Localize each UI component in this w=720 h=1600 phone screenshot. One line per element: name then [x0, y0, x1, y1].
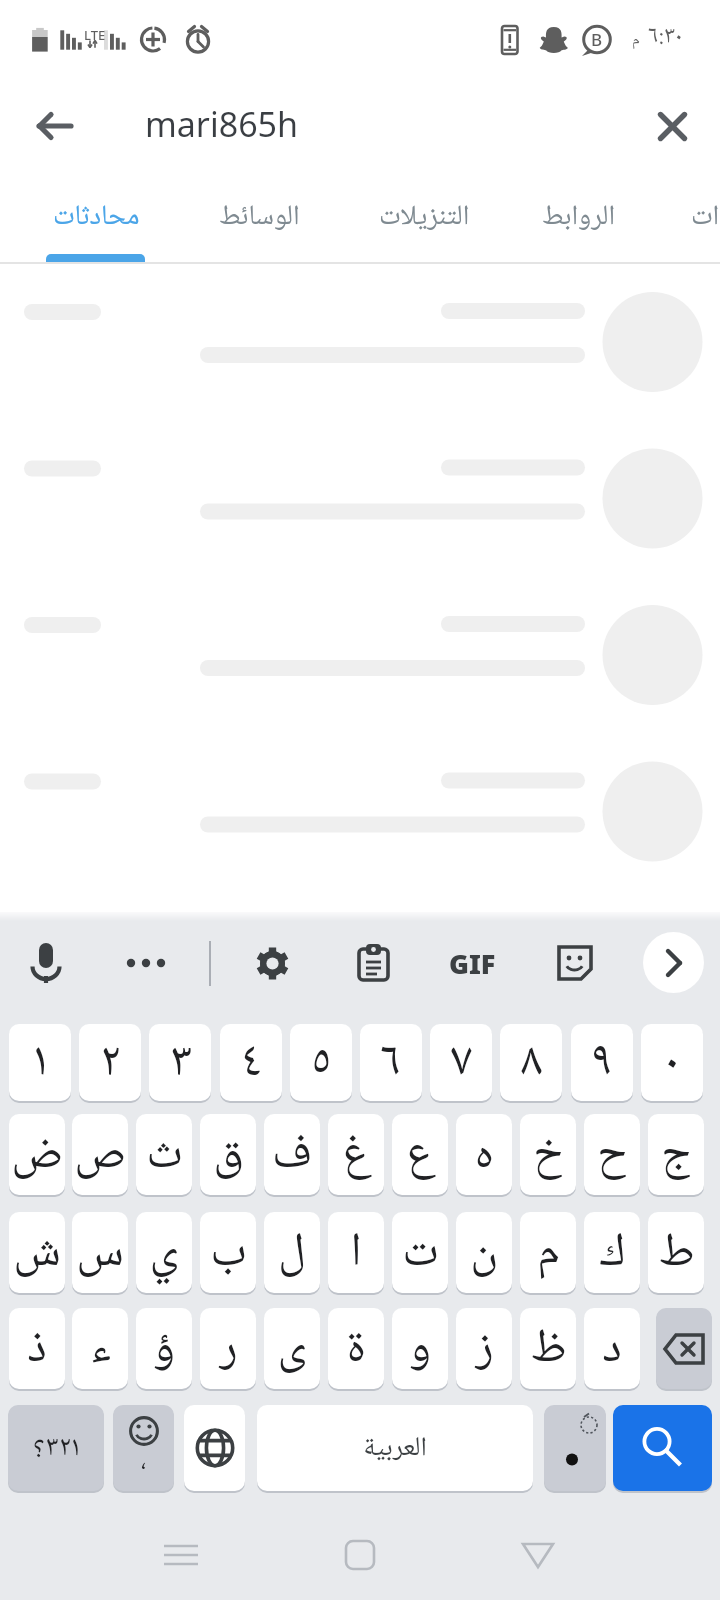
button[interactable]: الوسائط	[180, 172, 339, 262]
button[interactable]: م	[520, 1212, 576, 1293]
button[interactable]: Stickers	[545, 933, 605, 993]
staticText: ٧	[451, 1030, 472, 1095]
button[interactable]: ق	[200, 1114, 256, 1195]
button[interactable]: ز	[456, 1308, 512, 1389]
staticText: ٦:٣٠	[648, 20, 683, 53]
button[interactable]: د	[584, 1308, 640, 1389]
button[interactable]: ظ	[520, 1308, 576, 1389]
button[interactable]: ه	[456, 1114, 512, 1195]
staticText: ٢	[59, 1429, 71, 1467]
button[interactable]: ج	[648, 1114, 704, 1195]
button[interactable]: More options	[116, 933, 176, 993]
staticText: ٤	[241, 1030, 262, 1095]
staticText: ،	[141, 1445, 147, 1478]
button[interactable]: ي	[136, 1212, 192, 1293]
staticText: ٥	[312, 1030, 331, 1095]
staticText: ه	[474, 1123, 494, 1187]
button[interactable]: التنزيلات	[344, 172, 504, 262]
button[interactable]: Backspace	[656, 1308, 712, 1389]
button[interactable]: ى	[264, 1308, 320, 1389]
button[interactable]: Change language	[184, 1405, 245, 1491]
staticText: س	[76, 1221, 124, 1285]
staticText: ط	[658, 1221, 695, 1285]
button[interactable]	[0, 304, 720, 454]
button[interactable]: ط	[648, 1212, 704, 1293]
button[interactable]: ٥	[290, 1024, 352, 1101]
staticText: GIF	[449, 945, 496, 982]
button[interactable]: ٠	[641, 1024, 703, 1101]
button[interactable]	[0, 461, 720, 611]
button[interactable]: ف	[264, 1114, 320, 1195]
button[interactable]: ات	[650, 172, 720, 262]
staticText: الروابط	[542, 198, 616, 236]
button[interactable]: ء	[72, 1308, 128, 1389]
staticText: ات	[691, 198, 720, 236]
button[interactable]: ذ	[9, 1308, 65, 1389]
button[interactable]: Expand toolbar	[643, 932, 704, 993]
staticText: ا	[350, 1221, 362, 1285]
staticText: ٢	[100, 1030, 120, 1095]
staticText: العربية	[363, 1430, 427, 1467]
button[interactable]: GIF	[442, 933, 502, 993]
staticText: ؟	[33, 1429, 45, 1467]
button[interactable]: Emoji	[113, 1405, 174, 1491]
button[interactable]: ٣	[149, 1024, 211, 1101]
staticText: ٩	[592, 1030, 613, 1095]
button[interactable]: ث	[136, 1114, 192, 1195]
button[interactable]	[0, 774, 720, 924]
staticText: ٣	[169, 1030, 192, 1095]
staticText: ة	[346, 1317, 366, 1381]
staticText: mari865h	[145, 101, 299, 147]
button[interactable]	[0, 617, 720, 767]
button[interactable]: ص	[72, 1114, 128, 1195]
staticText: ٨	[521, 1030, 542, 1095]
button[interactable]: Clear search	[642, 96, 702, 156]
button[interactable]: س	[72, 1212, 128, 1293]
button[interactable]: خ	[520, 1114, 576, 1195]
button[interactable]: غ	[328, 1114, 384, 1195]
staticText: ح	[597, 1123, 627, 1187]
button[interactable]: ل	[264, 1212, 320, 1293]
button[interactable]: ٦	[360, 1024, 422, 1101]
button[interactable]: ن	[456, 1212, 512, 1293]
button[interactable]: و	[392, 1308, 448, 1389]
button[interactable]: Recent apps	[151, 1525, 211, 1585]
button[interactable]: ا	[328, 1212, 384, 1293]
button[interactable]: ت	[392, 1212, 448, 1293]
staticText: ظ	[530, 1317, 567, 1381]
button[interactable]: Back	[508, 1525, 568, 1585]
button[interactable]: ع	[392, 1114, 448, 1195]
staticText: ب	[210, 1221, 247, 1285]
button[interactable]: Back	[25, 96, 85, 156]
staticText: ٣	[45, 1429, 59, 1467]
button[interactable]: Settings	[242, 933, 302, 993]
button[interactable]: Search	[613, 1405, 712, 1491]
button[interactable]: ب	[200, 1212, 256, 1293]
staticText: B	[591, 28, 603, 51]
button[interactable]: ؟	[8, 1405, 104, 1491]
button[interactable]: Clipboard	[343, 933, 403, 993]
button[interactable]: ش	[9, 1212, 65, 1293]
button[interactable]: ة	[328, 1308, 384, 1389]
button[interactable]: الروابط	[504, 172, 654, 262]
button[interactable]: ك	[584, 1212, 640, 1293]
button[interactable]: ٩	[571, 1024, 633, 1101]
staticText: و	[409, 1317, 431, 1381]
button[interactable]: Home	[330, 1525, 390, 1585]
button[interactable]: ض	[9, 1114, 65, 1195]
button[interactable]: Voice input	[16, 933, 76, 993]
button[interactable]: Period	[544, 1405, 606, 1491]
staticText: م	[537, 1221, 560, 1285]
button[interactable]: محادثات	[18, 172, 175, 262]
button[interactable]: ١	[9, 1024, 71, 1101]
button[interactable]: ٢	[79, 1024, 141, 1101]
button[interactable]: ح	[584, 1114, 640, 1195]
staticText: ل	[278, 1221, 306, 1285]
button[interactable]: ٤	[220, 1024, 282, 1101]
button[interactable]: ر	[200, 1308, 256, 1389]
button[interactable]: ؤ	[136, 1308, 192, 1389]
staticText: د	[602, 1317, 622, 1381]
button[interactable]: ٨	[500, 1024, 562, 1101]
button[interactable]: العربية	[257, 1405, 533, 1491]
button[interactable]: ٧	[430, 1024, 492, 1101]
